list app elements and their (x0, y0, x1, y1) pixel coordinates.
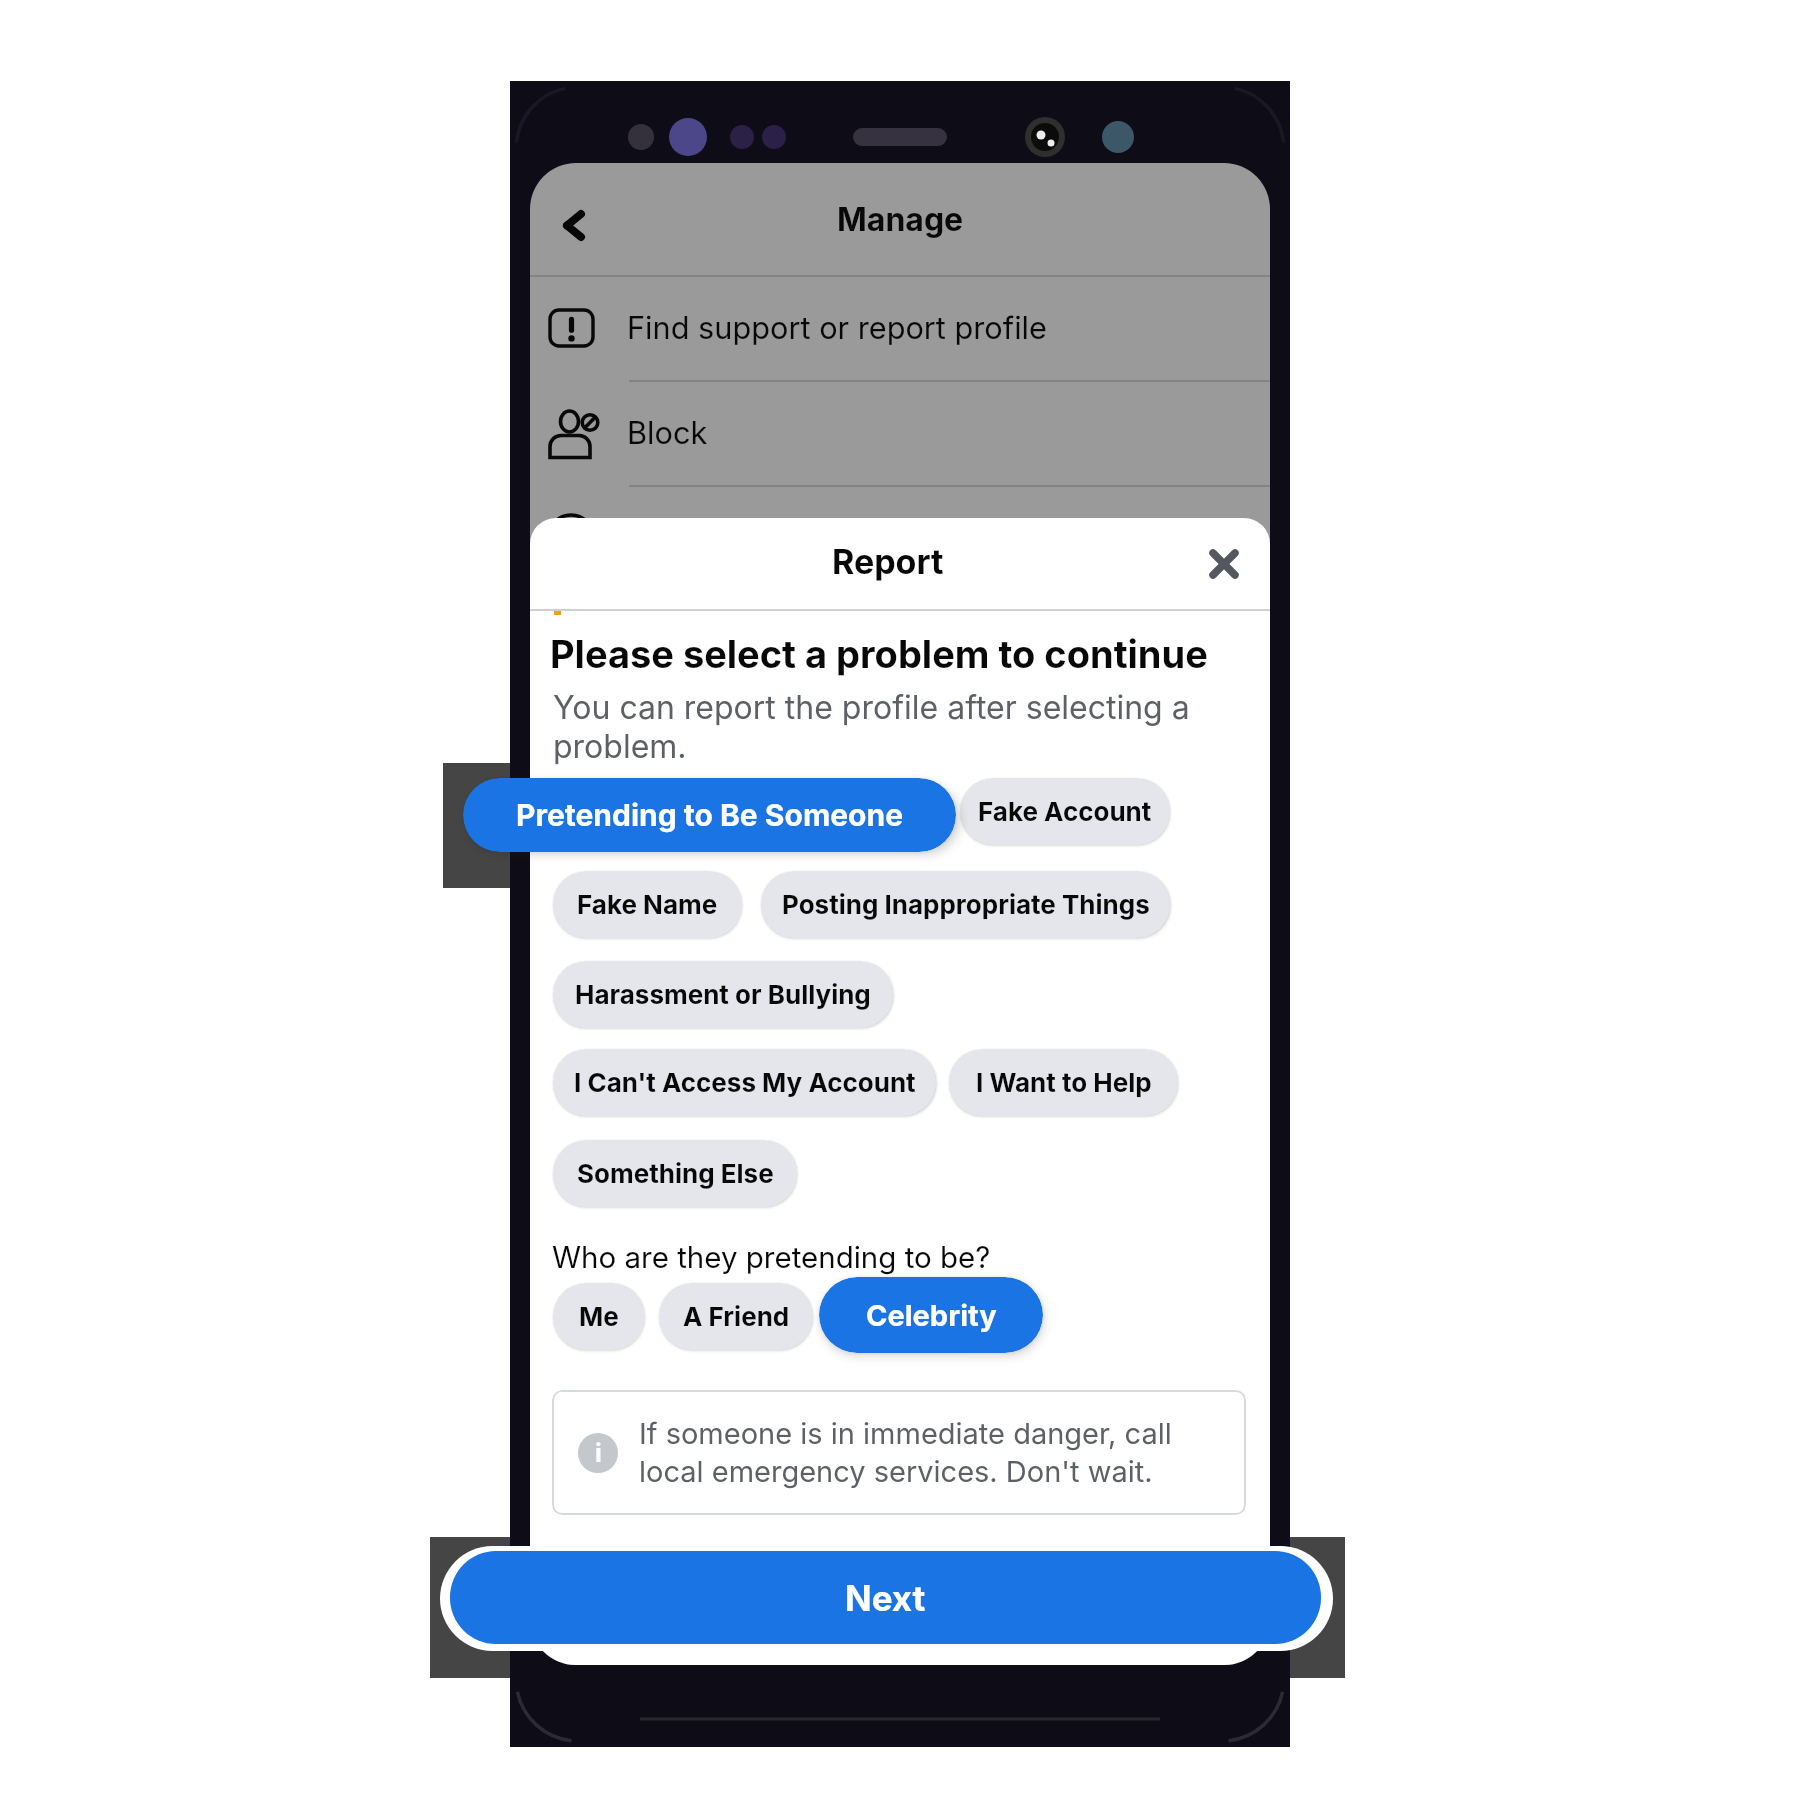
button[interactable]: Something Else (553, 1140, 797, 1207)
button[interactable]: Find support or report profile (530, 275, 1270, 380)
staticText: Harassment or Bullying (575, 979, 871, 1010)
staticText: Manage (837, 200, 964, 239)
staticText: I Can't Access My Account (574, 1067, 916, 1098)
button[interactable]: Next (450, 1551, 1321, 1644)
button[interactable]: Back (552, 185, 632, 265)
button[interactable]: Celebrity (819, 1277, 1043, 1353)
button[interactable] (530, 485, 1270, 590)
staticText: A Friend (683, 1301, 790, 1332)
staticText: i (595, 1438, 602, 1468)
staticText: Fake Name (577, 889, 718, 920)
staticText: Report (832, 541, 944, 582)
button[interactable]: Harassment or Bullying (553, 961, 893, 1028)
button[interactable]: Me (553, 1283, 645, 1350)
staticText: Celebrity (866, 1298, 997, 1333)
staticText: Who are they pretending to be? (552, 1239, 991, 1275)
button[interactable]: Close (1195, 535, 1253, 593)
button[interactable]: A Friend (659, 1283, 813, 1350)
staticText: Please select a problem to continue (550, 631, 1208, 677)
staticText: Pretending to Be Someone (516, 797, 904, 833)
staticText: I Want to Help (976, 1067, 1152, 1098)
button[interactable]: I Want to Help (949, 1049, 1178, 1116)
button[interactable]: Pretending to Be Someone (463, 778, 956, 852)
staticText: Me (579, 1301, 619, 1332)
button[interactable]: Posting Inappropriate Things (761, 871, 1170, 938)
button[interactable]: I Can't Access My Account (553, 1049, 936, 1116)
staticText: Block (627, 414, 708, 451)
staticText: Posting Inappropriate Things (782, 889, 1150, 920)
button[interactable]: Fake Account (960, 778, 1170, 845)
staticText: Find support or report profile (627, 309, 1047, 346)
staticText: Fake Account (978, 796, 1152, 827)
button[interactable]: Block (530, 380, 1270, 485)
button[interactable]: Fake Name (553, 871, 742, 938)
staticText: You can report the profile after selecti… (553, 688, 1190, 766)
staticText: If someone is in immediate danger, call … (639, 1416, 1172, 1489)
staticText: Something Else (577, 1158, 774, 1189)
staticText: Next (845, 1577, 926, 1619)
